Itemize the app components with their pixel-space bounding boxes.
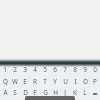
staticText: Y bbox=[53, 77, 57, 86]
staticText: Q bbox=[3, 77, 8, 86]
staticText: H bbox=[53, 88, 58, 97]
button[interactable]: L bbox=[80, 87, 90, 98]
staticText: U bbox=[63, 77, 68, 86]
staticText: 0 bbox=[93, 65, 97, 74]
button[interactable]: Y bbox=[50, 76, 60, 87]
button[interactable]: T bbox=[40, 76, 50, 87]
staticText: E bbox=[23, 77, 27, 86]
button[interactable]: 2 bbox=[10, 64, 20, 75]
button[interactable]: P bbox=[90, 76, 100, 87]
staticText: P bbox=[93, 77, 97, 86]
button[interactable]: 8 bbox=[70, 64, 80, 75]
button[interactable]: Backspace bbox=[90, 87, 100, 98]
staticText: 8 bbox=[73, 65, 77, 74]
staticText: R bbox=[33, 77, 37, 86]
button[interactable]: 7 bbox=[60, 64, 70, 75]
staticText: L bbox=[83, 88, 87, 97]
button[interactable]: D bbox=[20, 87, 30, 98]
staticText: A bbox=[3, 88, 8, 97]
button[interactable]: 9 bbox=[80, 64, 90, 75]
button[interactable]: F bbox=[30, 87, 40, 98]
staticText: 9 bbox=[83, 65, 87, 74]
button[interactable]: Q bbox=[0, 76, 10, 87]
button[interactable]: W bbox=[10, 76, 20, 87]
staticText: S bbox=[13, 88, 17, 97]
staticText: W bbox=[12, 77, 18, 86]
button[interactable]: 0 bbox=[90, 64, 100, 75]
button[interactable]: U bbox=[60, 76, 70, 87]
button[interactable]: S bbox=[10, 87, 20, 98]
button[interactable]: K bbox=[70, 87, 80, 98]
staticText: 3 bbox=[23, 65, 27, 74]
button[interactable]: 1 bbox=[0, 64, 10, 75]
button[interactable]: H bbox=[50, 87, 60, 98]
staticText: T bbox=[43, 77, 47, 86]
button[interactable]: G bbox=[40, 87, 50, 98]
staticText: F bbox=[33, 88, 37, 97]
staticText: O bbox=[83, 77, 88, 86]
button[interactable]: 4 bbox=[30, 64, 40, 75]
button[interactable]: R bbox=[30, 76, 40, 87]
button[interactable]: O bbox=[80, 76, 90, 87]
button[interactable]: 6 bbox=[50, 64, 60, 75]
button[interactable]: I bbox=[70, 76, 80, 87]
staticText: K bbox=[73, 88, 77, 97]
button[interactable]: J bbox=[60, 87, 70, 98]
staticText: 2 bbox=[13, 65, 17, 74]
staticText: 6 bbox=[53, 65, 57, 74]
staticText: I bbox=[74, 77, 77, 86]
staticText: 7 bbox=[63, 65, 67, 74]
staticText: 4 bbox=[33, 65, 37, 74]
button[interactable]: 5 bbox=[40, 64, 50, 75]
staticText: G bbox=[43, 88, 48, 97]
staticText: J bbox=[64, 88, 66, 97]
staticText: D bbox=[23, 88, 28, 97]
button[interactable]: A bbox=[0, 87, 10, 98]
button[interactable]: 3 bbox=[20, 64, 30, 75]
staticText: 1 bbox=[3, 65, 7, 74]
staticText: 5 bbox=[43, 65, 47, 74]
button[interactable]: E bbox=[20, 76, 30, 87]
